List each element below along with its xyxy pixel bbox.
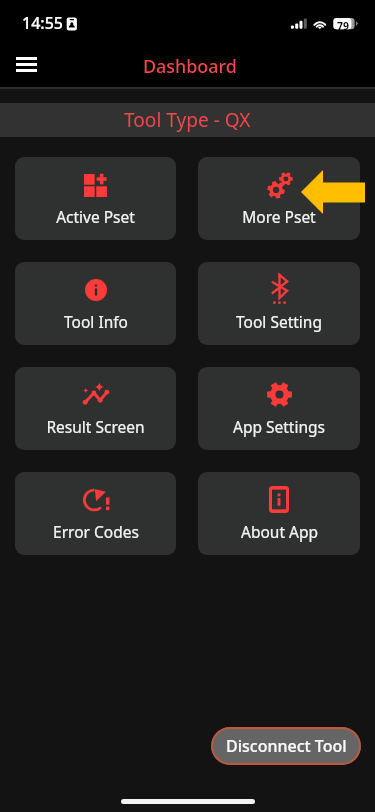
staticText: Tool Setting (236, 311, 322, 332)
staticText: Active Pset (56, 206, 135, 227)
staticText: 14:55 (22, 12, 63, 34)
staticText: Tool Type - QX (124, 107, 251, 133)
staticText: 79 (337, 19, 350, 33)
button[interactable]: About App (198, 472, 360, 555)
staticText: About App (241, 521, 318, 542)
staticText: Disconnect Tool (226, 735, 347, 757)
button[interactable]: Result Screen (15, 367, 176, 450)
button[interactable]: Disconnect Tool (211, 727, 361, 765)
staticText: App Settings (233, 416, 325, 437)
staticText: Result Screen (46, 416, 145, 437)
button[interactable]: Error Codes (15, 472, 176, 555)
staticText: Error Codes (53, 521, 139, 542)
button[interactable]: Tool Setting (198, 262, 360, 345)
staticText: Tool Info (64, 311, 128, 332)
staticText: More Pset (242, 206, 316, 227)
button[interactable]: Tool Info (15, 262, 176, 345)
button[interactable]: More Pset (198, 157, 360, 240)
staticText: Dashboard (143, 54, 237, 78)
button[interactable]: Menu (10, 46, 43, 86)
button[interactable]: App Settings (198, 367, 360, 450)
button[interactable]: Active Pset (15, 157, 176, 240)
